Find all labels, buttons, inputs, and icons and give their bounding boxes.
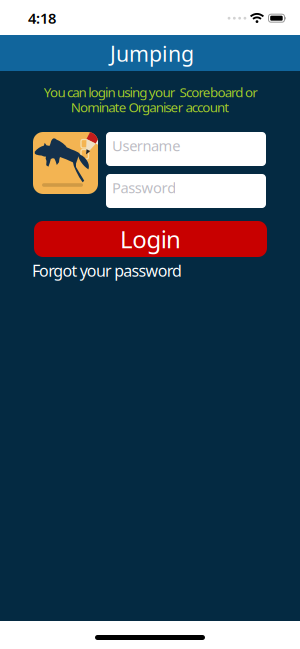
button[interactable]: Username bbox=[106, 132, 266, 166]
button[interactable]: Login bbox=[34, 221, 267, 257]
staticText: Jumping bbox=[110, 39, 194, 68]
button[interactable]: Password bbox=[106, 174, 266, 208]
staticText: Login bbox=[120, 223, 181, 255]
staticText: Password bbox=[112, 178, 176, 197]
staticText: You can login using your Scoreboard or bbox=[44, 83, 258, 101]
staticText: Forgot your password bbox=[32, 260, 182, 281]
staticText: 4:18 bbox=[28, 8, 56, 28]
staticText: Nominate Organiser account bbox=[71, 98, 229, 116]
button[interactable]: Forgot your password bbox=[32, 260, 182, 281]
staticText: Username bbox=[112, 136, 180, 155]
